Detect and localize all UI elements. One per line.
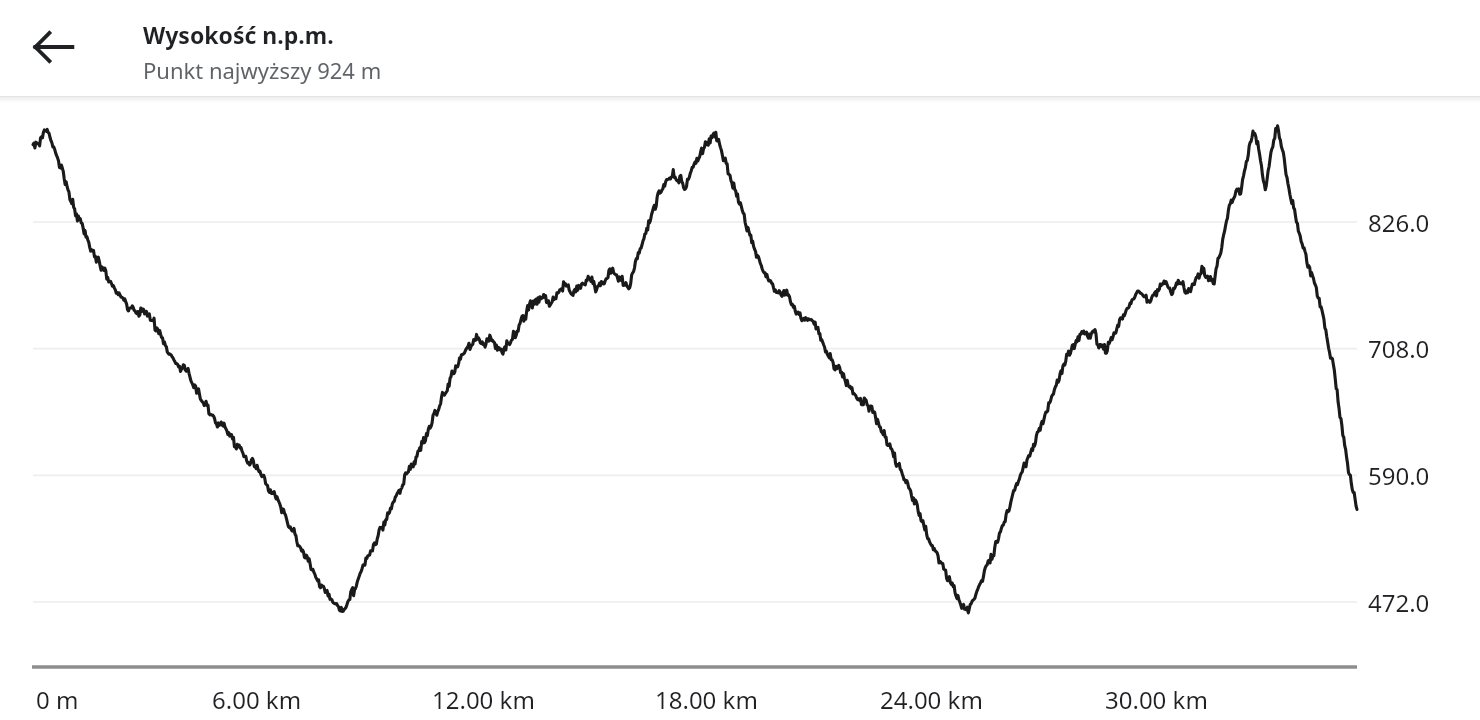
staticText: 30.00 km (1105, 683, 1208, 716)
staticText: 18.00 km (655, 683, 758, 716)
staticText: 0 m (36, 683, 79, 716)
staticText: 590.0 (1368, 459, 1430, 492)
staticText: 6.00 km (212, 683, 302, 716)
button[interactable]: Back (33, 23, 81, 71)
staticText: 12.00 km (432, 683, 535, 716)
staticText: 708.0 (1368, 332, 1430, 365)
staticText: 826.0 (1368, 206, 1430, 239)
staticText: Wysokość n.p.m. (143, 19, 334, 50)
staticText: 24.00 km (880, 683, 983, 716)
staticText: 472.0 (1368, 586, 1430, 619)
staticText: Punkt najwyższy 924 m (143, 55, 382, 85)
